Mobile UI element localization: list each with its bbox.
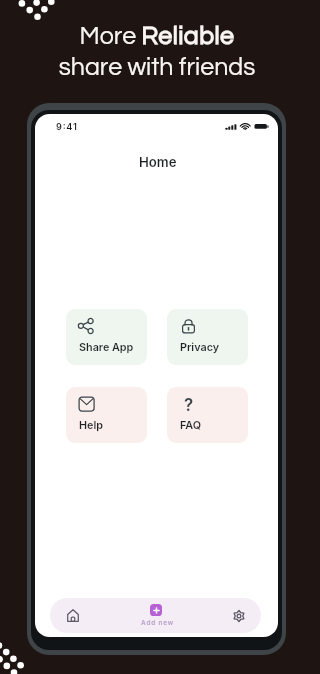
button[interactable]: Settings: [215, 598, 262, 633]
button[interactable]: Help: [66, 387, 147, 443]
button[interactable]: Share App: [66, 309, 147, 365]
button[interactable]: Home: [50, 598, 96, 633]
button[interactable]: ?: [167, 387, 248, 443]
staticText: FAQ: [180, 419, 202, 432]
staticText: Help: [79, 419, 103, 432]
staticText: 9:41: [56, 121, 78, 132]
staticText: Add new: [132, 619, 183, 629]
staticText: ?: [184, 395, 194, 416]
staticText: Home: [139, 154, 177, 170]
button[interactable]: Add new: [131, 598, 182, 633]
staticText: Share App: [79, 341, 134, 354]
button[interactable]: Privacy: [167, 309, 248, 365]
staticText: More Reliable share with friends: [2, 23, 312, 93]
staticText: Privacy: [180, 341, 220, 354]
